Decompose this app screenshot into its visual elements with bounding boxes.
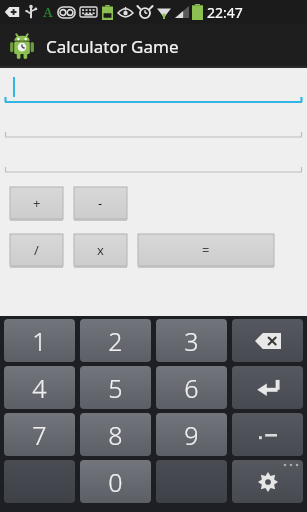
staticText: x xyxy=(97,241,104,259)
button[interactable]: Settings xyxy=(232,460,303,503)
button[interactable]: Dot dash xyxy=(232,413,303,456)
button[interactable]: = xyxy=(138,234,274,268)
button[interactable]: - xyxy=(74,187,127,221)
staticText: 4 xyxy=(32,371,47,405)
staticText: 0 xyxy=(108,465,123,499)
button[interactable]: + xyxy=(10,187,63,221)
button[interactable]: 2 xyxy=(80,319,151,362)
button[interactable]: Enter xyxy=(232,366,303,409)
staticText: 6 xyxy=(184,371,199,405)
button[interactable] xyxy=(4,72,303,107)
button[interactable]: Calculator Game xyxy=(0,24,307,68)
button[interactable]: 6 xyxy=(156,366,227,409)
button[interactable]: / xyxy=(10,234,63,268)
button[interactable] xyxy=(4,460,75,503)
button[interactable]: x xyxy=(74,234,127,268)
button[interactable]: 8 xyxy=(80,413,151,456)
staticText: 22:47 xyxy=(207,3,243,22)
staticText: 5 xyxy=(108,371,123,405)
staticText: - xyxy=(98,194,103,212)
button[interactable]: 3 xyxy=(156,319,227,362)
staticText: + xyxy=(33,194,41,212)
button[interactable]: 7 xyxy=(4,413,75,456)
button[interactable]: 1 xyxy=(4,319,75,362)
button[interactable]: Backspace xyxy=(232,319,303,362)
staticText: 8 xyxy=(108,418,123,452)
staticText: 1 xyxy=(32,324,47,358)
button[interactable]: 9 xyxy=(156,413,227,456)
staticText: 9 xyxy=(184,418,199,452)
staticText: Calculator Game xyxy=(46,35,179,58)
staticText: 3 xyxy=(184,324,199,358)
button[interactable]: 5 xyxy=(80,366,151,409)
button[interactable]: 4 xyxy=(4,366,75,409)
staticText: 2 xyxy=(108,324,123,358)
button[interactable] xyxy=(156,460,227,503)
staticText: / xyxy=(34,241,39,259)
staticText: = xyxy=(202,241,210,259)
button[interactable]: 0 xyxy=(80,460,151,503)
staticText: A xyxy=(43,3,53,21)
button[interactable] xyxy=(4,107,303,142)
staticText: 7 xyxy=(32,418,47,452)
button[interactable] xyxy=(4,142,303,177)
